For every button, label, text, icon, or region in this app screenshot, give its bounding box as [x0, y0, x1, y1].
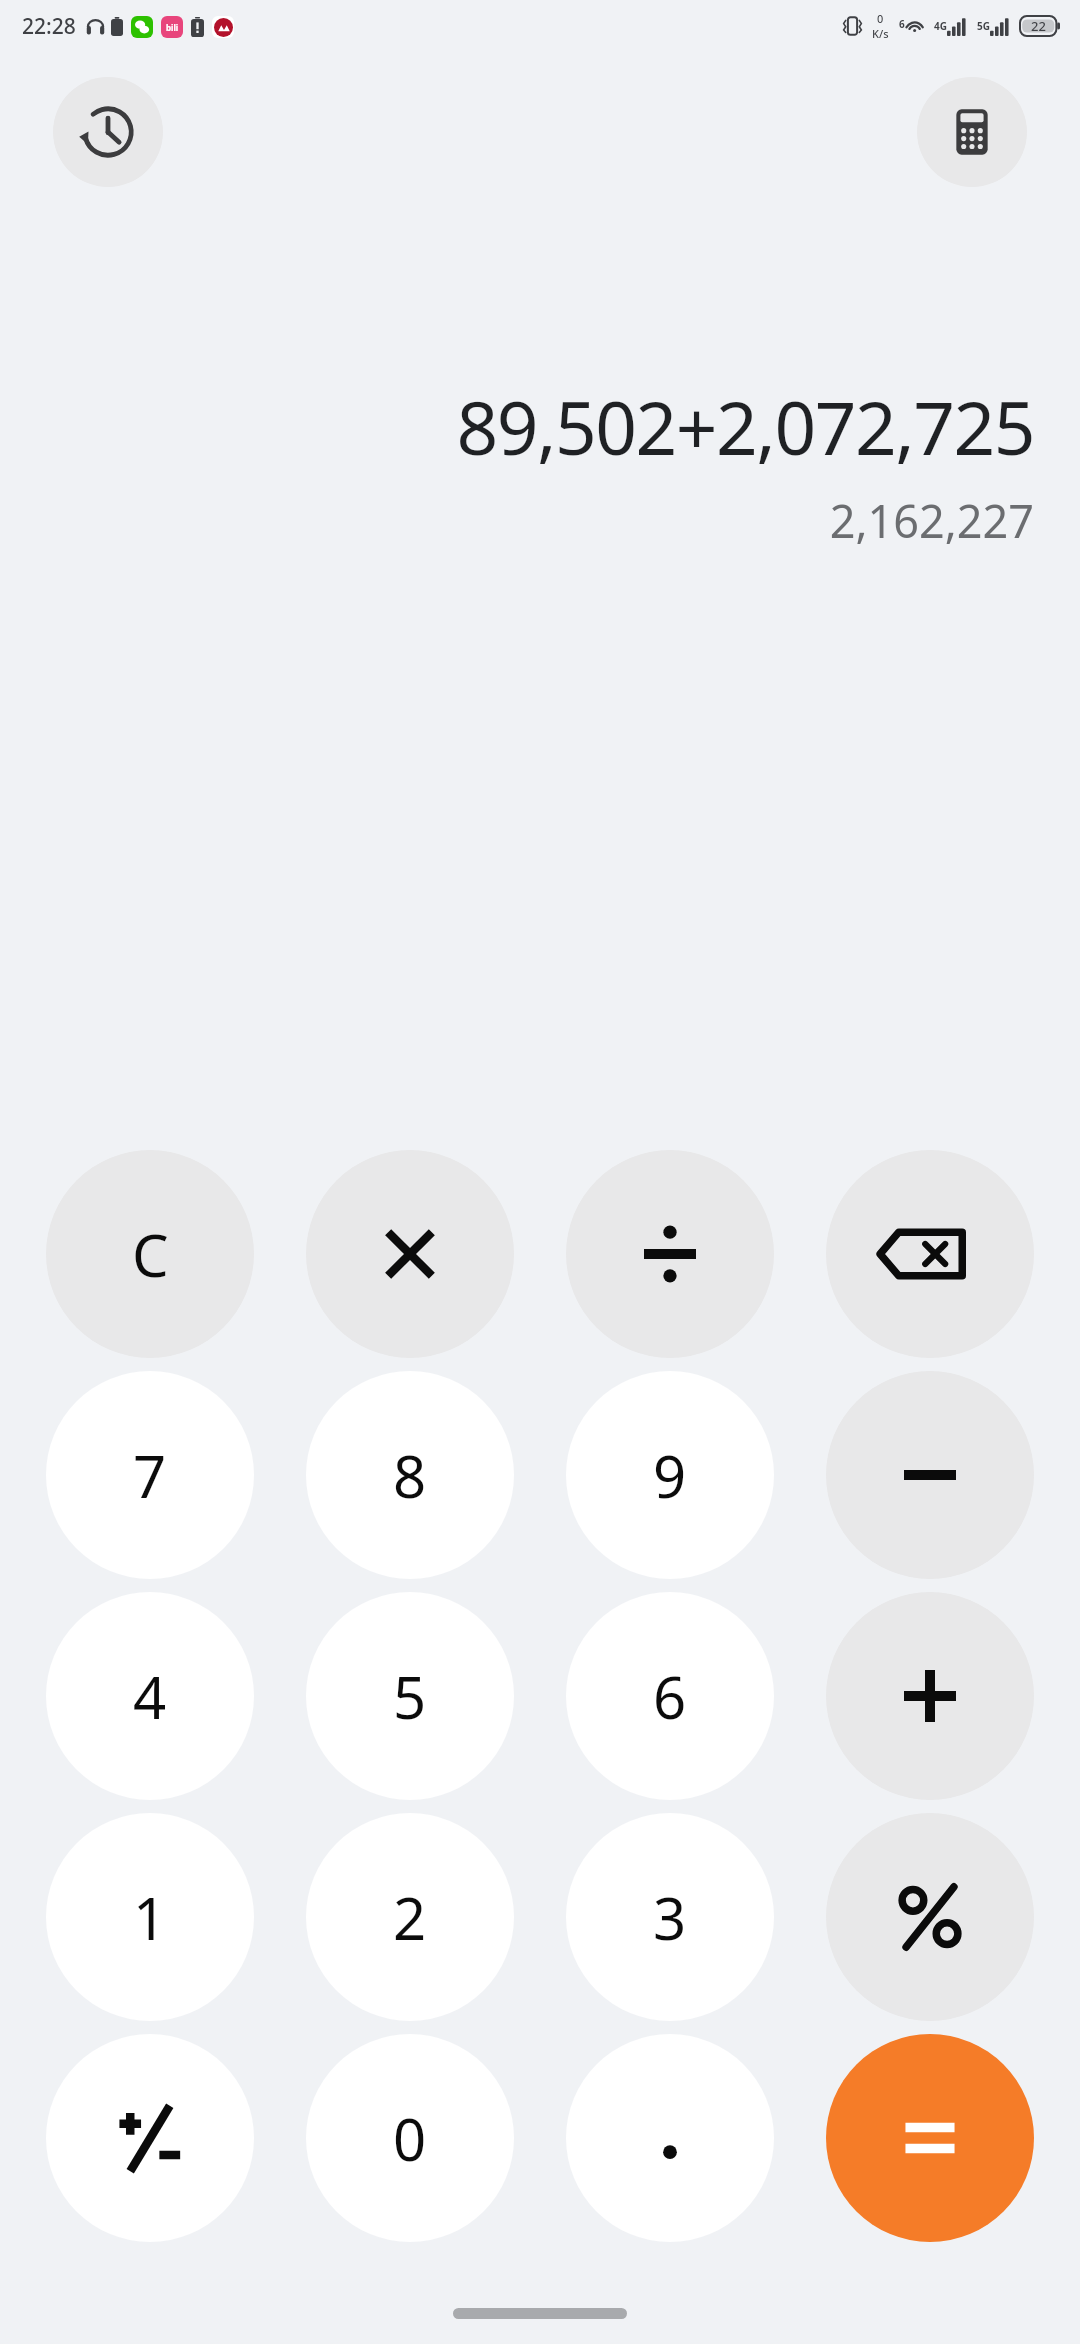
button[interactable]: 9	[566, 1371, 774, 1579]
button[interactable]: 0	[306, 2034, 514, 2242]
button[interactable]: Toggle sign	[46, 2034, 254, 2242]
staticText: 6	[653, 1657, 687, 1736]
staticText: bili	[166, 22, 179, 33]
staticText: 7	[133, 1436, 167, 1515]
button[interactable]: Equals	[826, 2034, 1034, 2242]
staticText: 22	[1031, 17, 1046, 35]
button[interactable]: 7	[46, 1371, 254, 1579]
staticText: 22:28	[22, 12, 76, 41]
button[interactable]: 4	[46, 1592, 254, 1800]
staticText: 0	[877, 11, 884, 26]
button[interactable]: 1	[46, 1813, 254, 2021]
button[interactable]: Plus	[826, 1592, 1034, 1800]
button[interactable]: 2	[306, 1813, 514, 2021]
staticText: 2,162,227	[829, 490, 1034, 551]
button[interactable]: Decimal point	[566, 2034, 774, 2242]
button[interactable]: 6	[566, 1592, 774, 1800]
staticText: 4	[133, 1657, 167, 1736]
staticText: 9	[653, 1436, 687, 1515]
button[interactable]: Backspace	[826, 1150, 1034, 1358]
button[interactable]: Percent	[826, 1813, 1034, 2021]
staticText: 5	[393, 1657, 427, 1736]
staticText: K/s	[872, 26, 889, 41]
button[interactable]: History	[53, 77, 163, 187]
staticText: 1	[133, 1878, 167, 1957]
staticText: 0	[393, 2099, 427, 2178]
staticText: 3	[653, 1878, 687, 1957]
staticText: 89,502+2,072,725	[456, 377, 1034, 476]
button[interactable]: Calculator keypad	[917, 77, 1027, 187]
button[interactable]: Multiply	[306, 1150, 514, 1358]
staticText: 2	[393, 1878, 427, 1957]
staticText: C	[132, 1215, 169, 1294]
button[interactable]: Minus	[826, 1371, 1034, 1579]
button[interactable]: 8	[306, 1371, 514, 1579]
staticText: 4G	[934, 19, 947, 33]
staticText: 5G	[977, 19, 990, 33]
button[interactable]: 5	[306, 1592, 514, 1800]
button[interactable]: C	[46, 1150, 254, 1358]
staticText: 8	[393, 1436, 427, 1515]
staticText: 6	[899, 17, 905, 31]
button[interactable]: Divide	[566, 1150, 774, 1358]
button[interactable]: 3	[566, 1813, 774, 2021]
